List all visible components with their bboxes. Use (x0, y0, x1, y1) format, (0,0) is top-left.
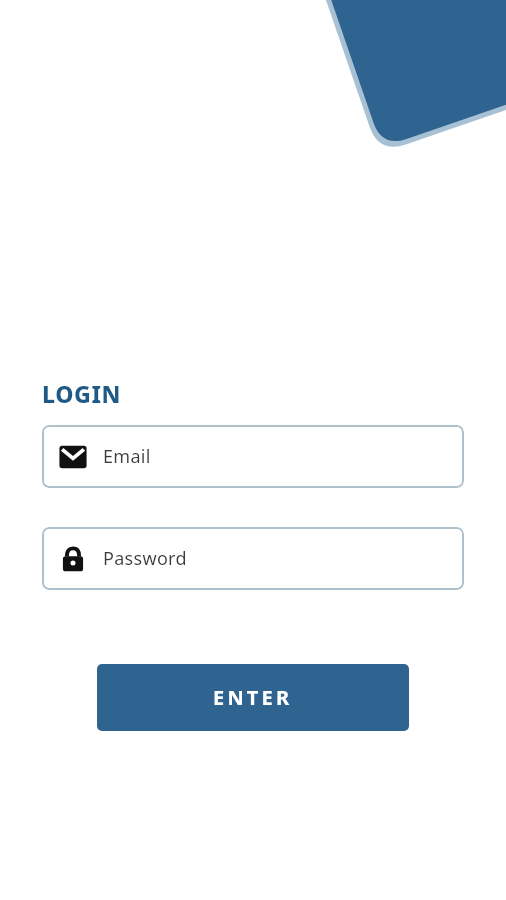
button[interactable]: Email (42, 425, 464, 488)
other: Email (59, 443, 87, 471)
button[interactable]: ENTER (97, 664, 409, 731)
staticText: ENTER (213, 684, 293, 711)
staticText: LOGIN (42, 378, 122, 409)
button[interactable]: Password (42, 527, 464, 590)
staticText: Password (103, 546, 187, 571)
staticText: Email (103, 444, 151, 469)
other: Password (59, 545, 87, 573)
